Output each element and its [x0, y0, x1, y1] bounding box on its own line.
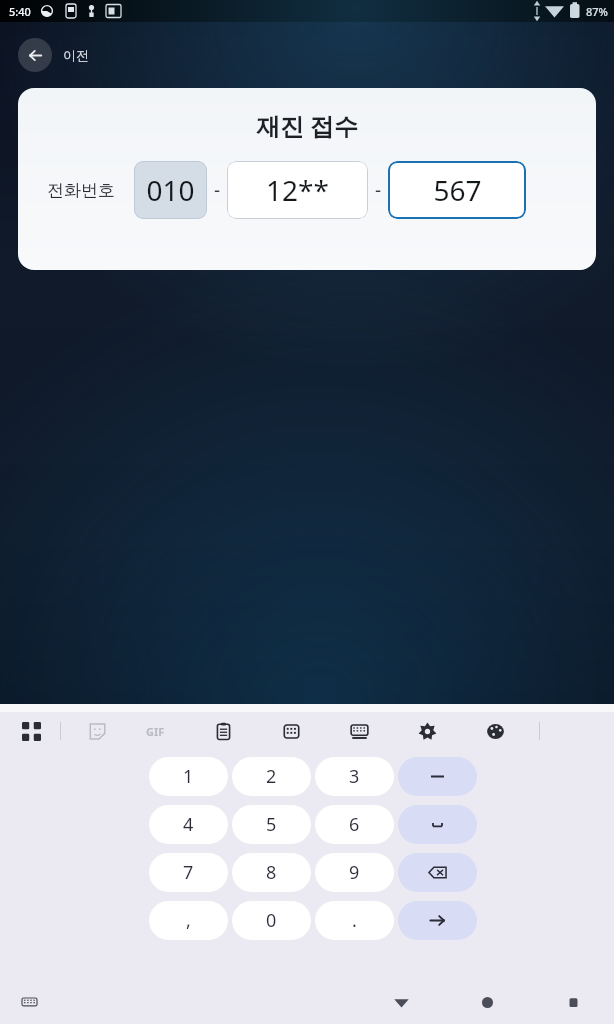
button[interactable]: GIF: [121, 712, 189, 750]
staticText: 5: [266, 812, 277, 837]
staticText: 재진 접수: [18, 109, 596, 142]
staticText: 6: [349, 812, 360, 837]
button[interactable]: Back: [388, 989, 414, 1015]
staticText: 9: [349, 860, 360, 885]
button[interactable]: Stickers: [73, 712, 121, 750]
button[interactable]: Settings: [393, 712, 461, 750]
button[interactable]: Clipboard: [189, 712, 257, 750]
button[interactable]: Backspace: [398, 853, 477, 892]
staticText: 2: [266, 764, 277, 789]
staticText: 이전: [63, 47, 89, 63]
button[interactable]: 6: [315, 805, 394, 844]
button[interactable]: .: [315, 901, 394, 940]
button[interactable]: 3: [315, 757, 394, 796]
button[interactable]: Apps: [14, 712, 48, 750]
staticText: 7: [183, 860, 194, 885]
staticText: 010: [146, 171, 195, 209]
button[interactable]: Space: [398, 805, 477, 844]
staticText: ,: [186, 908, 191, 933]
button[interactable]: Keyboard modes: [325, 712, 393, 750]
staticText: 8: [266, 860, 277, 885]
staticText: 전화번호: [47, 180, 115, 201]
button[interactable]: Back: [18, 38, 52, 72]
button[interactable]: 12**: [227, 161, 368, 219]
button[interactable]: Minus: [398, 757, 477, 796]
staticText: 12**: [266, 171, 329, 209]
button[interactable]: ,: [149, 901, 228, 940]
button[interactable]: Hide keyboard: [16, 989, 42, 1015]
staticText: 4: [183, 812, 194, 837]
button[interactable]: 4: [149, 805, 228, 844]
button[interactable]: 9: [315, 853, 394, 892]
button[interactable]: 2: [232, 757, 311, 796]
staticText: -: [214, 177, 221, 203]
button[interactable]: 010: [134, 161, 207, 219]
button[interactable]: Recents: [560, 989, 586, 1015]
button[interactable]: Theme: [461, 712, 529, 750]
staticText: -: [375, 177, 382, 203]
button[interactable]: 8: [232, 853, 311, 892]
button[interactable]: Number pad: [257, 712, 325, 750]
button[interactable]: 567: [388, 161, 526, 219]
staticText: 1: [183, 764, 194, 789]
button[interactable]: 5: [232, 805, 311, 844]
staticText: 567: [433, 171, 482, 209]
staticText: GIF: [146, 724, 165, 739]
staticText: 0: [266, 908, 277, 933]
staticText: 3: [349, 764, 360, 789]
staticText: 87%: [586, 4, 608, 19]
button[interactable]: Home: [474, 989, 500, 1015]
button[interactable]: Enter: [398, 901, 477, 940]
button[interactable]: 0: [232, 901, 311, 940]
button[interactable]: 1: [149, 757, 228, 796]
staticText: 5:40: [9, 4, 31, 19]
button[interactable]: 7: [149, 853, 228, 892]
staticText: .: [352, 908, 357, 933]
